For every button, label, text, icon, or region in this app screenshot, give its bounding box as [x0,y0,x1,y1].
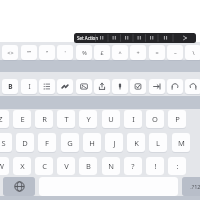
staticText: J [113,138,116,148]
staticText: Z [0,114,3,124]
staticText: <> [7,49,14,56]
button[interactable]: “” [21,45,37,60]
button[interactable]: = [149,45,165,60]
button[interactable]: G [61,133,79,152]
button[interactable]: U [102,110,120,128]
staticText: R [42,114,47,124]
staticText: F [45,138,49,148]
button[interactable]: W [0,157,9,175]
staticText: M [178,138,185,148]
button[interactable]: Insert image [76,79,92,94]
staticText: W [0,161,4,171]
button[interactable]: B [2,79,18,94]
staticText: I [132,114,135,124]
button[interactable]: ^ [112,45,128,60]
staticText: ' [64,49,66,56]
button[interactable]: B [79,157,97,175]
staticText: E [20,114,25,124]
staticText: H [89,138,95,148]
button[interactable]: : [168,157,186,175]
staticText: £ [100,49,104,56]
button[interactable]: Set Action [74,33,196,43]
button[interactable]: E [13,110,31,128]
staticText: ‘’ [46,49,48,56]
staticText: V [64,161,69,171]
staticText: U [108,114,114,124]
staticText: Set Action [77,35,99,41]
staticText: O [152,114,158,124]
button[interactable]: C [35,157,53,175]
button[interactable]: P [168,110,186,128]
button[interactable]: V [57,157,75,175]
staticText: T [64,114,69,124]
staticText: ! [154,161,157,171]
button[interactable]: D [16,133,34,152]
button[interactable]: ? [124,157,142,175]
staticText: B [8,82,13,91]
button[interactable]: ! [146,157,164,175]
button[interactable]: Indent [149,79,165,94]
staticText: + [136,49,140,56]
button[interactable]: O [146,110,164,128]
button[interactable]: I [21,79,37,94]
button[interactable]: N [102,157,120,175]
button[interactable]: J [105,133,123,152]
button[interactable]: K [127,133,145,152]
staticText: ^ [118,49,122,56]
staticText: D [22,138,28,148]
staticText: I [28,82,31,91]
button[interactable]: Y [79,110,97,128]
staticText: = [155,49,159,56]
staticText: P [175,114,180,124]
staticText: ? [131,161,135,171]
button[interactable]: Checklist [130,79,146,94]
button[interactable]: Upload [94,79,110,94]
button[interactable]: T [57,110,75,128]
staticText: G [67,138,73,148]
button[interactable]: Undo [167,79,183,94]
button[interactable]: .?123 [182,177,200,196]
button[interactable]: – [167,45,183,60]
staticText: L [156,138,160,148]
button[interactable]: S [0,133,12,152]
button[interactable]: Switch keyboard [3,177,35,196]
staticText: K [134,138,139,148]
button[interactable]: Z [0,110,9,128]
button[interactable]: Voice input [112,79,128,94]
button[interactable]: Redo [185,79,200,94]
staticText: .?123 [190,183,200,190]
button[interactable]: + [130,45,146,60]
button[interactable]: Bullet list [39,79,55,94]
staticText: % [82,49,87,56]
staticText: X [20,161,25,171]
button[interactable]: % [76,45,92,60]
button[interactable]: I [124,110,142,128]
staticText: N [108,161,114,171]
button[interactable]: \ [185,45,200,60]
staticText: C [42,161,47,171]
button[interactable]: X [13,157,31,175]
staticText: B [86,161,91,171]
button[interactable]: F [38,133,56,152]
button[interactable]: ' [57,45,73,60]
button[interactable]: M [172,133,190,152]
button[interactable]: R [35,110,53,128]
button[interactable]: ‘’ [39,45,55,60]
button[interactable]: L [149,133,167,152]
staticText: : [176,161,179,171]
button[interactable]: £ [94,45,110,60]
staticText: “” [27,49,31,56]
button[interactable]: <> [2,45,18,60]
staticText: \ [192,49,195,56]
staticText: S [1,138,6,148]
button[interactable]: H [83,133,101,152]
button[interactable]: Insert link [57,79,73,94]
staticText: Y [86,114,91,124]
staticText: – [174,49,177,56]
